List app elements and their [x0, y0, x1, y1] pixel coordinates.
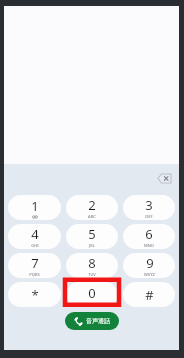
staticText: 音声通話	[86, 317, 110, 325]
staticText: TUV	[88, 272, 96, 277]
button[interactable]: 1	[8, 195, 61, 220]
button[interactable]: 4	[8, 224, 61, 249]
staticText: 9	[146, 254, 154, 272]
staticText: 5	[88, 225, 96, 243]
staticText: ABC	[88, 214, 96, 219]
staticText: 6	[145, 225, 153, 243]
staticText: JKL	[89, 243, 95, 248]
button[interactable]: 0	[66, 282, 118, 307]
button[interactable]: 音声通話	[65, 312, 119, 330]
button[interactable]: 8	[66, 253, 118, 278]
staticText: WXYZ	[144, 272, 155, 277]
button[interactable]: 6	[123, 224, 175, 249]
staticText: 2	[88, 196, 96, 214]
staticText: 8	[88, 254, 96, 272]
staticText: 0	[88, 284, 96, 302]
staticText: 7	[31, 254, 39, 272]
staticText: MNO	[144, 243, 154, 248]
button[interactable]: Backspace	[154, 170, 174, 186]
staticText: DEF	[145, 214, 153, 219]
staticText: 1	[31, 197, 39, 215]
staticText: PQRS	[29, 272, 40, 277]
staticText: *	[31, 286, 39, 304]
button[interactable]: 7	[8, 253, 61, 278]
button[interactable]: 2	[66, 195, 118, 220]
staticText: 4	[31, 225, 39, 243]
button[interactable]: 9	[123, 253, 175, 278]
button[interactable]: #	[123, 282, 175, 307]
staticText: GHI	[31, 243, 39, 248]
staticText: #	[145, 286, 154, 304]
button[interactable]: 5	[66, 224, 118, 249]
staticText: 3	[145, 196, 153, 214]
button[interactable]: *	[8, 282, 61, 307]
button[interactable]: 3	[123, 195, 175, 220]
